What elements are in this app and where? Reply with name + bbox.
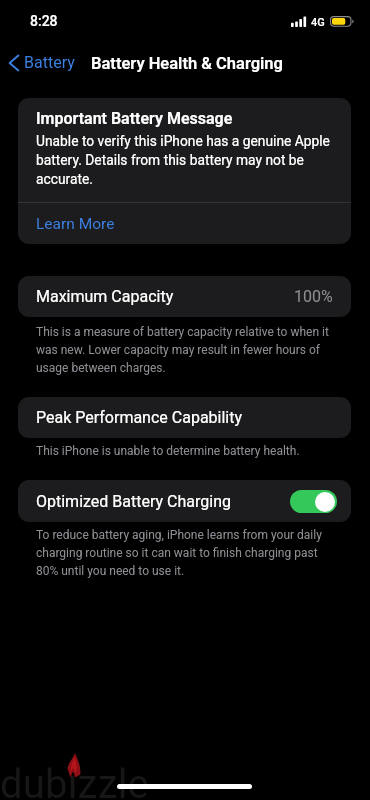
staticText: This iPhone is unable to determine batte… <box>36 444 336 458</box>
staticText: To reduce battery aging, iPhone learns f… <box>36 528 336 578</box>
staticText: 8:28 <box>30 13 58 29</box>
staticText: Maximum Capacity <box>36 287 174 306</box>
staticText: Optimized Battery Charging <box>36 492 231 511</box>
button[interactable]: Peak Performance Capability <box>18 397 351 438</box>
staticText: Learn More <box>36 215 115 233</box>
staticText: This is a measure of battery capacity re… <box>36 325 336 375</box>
staticText: 100% <box>294 287 333 306</box>
staticText: Unable to verify this iPhone has a genui… <box>36 133 335 187</box>
button[interactable]: Battery <box>6 49 83 76</box>
staticText: dubizzle <box>0 761 150 800</box>
staticText: Important Battery Message <box>36 109 233 128</box>
button[interactable]: Learn More <box>18 203 351 244</box>
button[interactable]: Optimized Battery Charging toggle, on <box>290 490 337 513</box>
staticText: Battery Health & Charging <box>91 54 283 73</box>
staticText: 4G <box>311 16 325 29</box>
staticText: Battery <box>24 53 75 72</box>
button[interactable]: Maximum Capacity <box>18 276 351 317</box>
staticText: Peak Performance Capability <box>36 408 243 427</box>
